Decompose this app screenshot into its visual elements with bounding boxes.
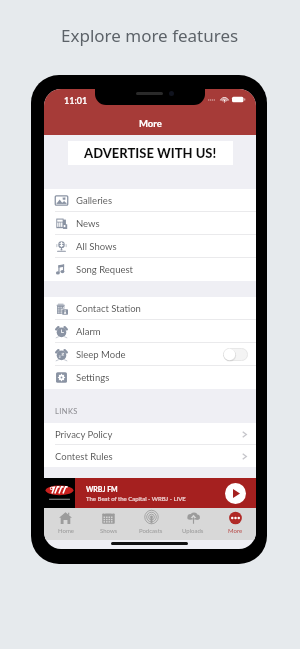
button[interactable]: All Shows: [44, 235, 256, 258]
staticText: ADVERTISE WITH US!: [84, 145, 217, 161]
button[interactable]: Song Request: [44, 258, 256, 281]
staticText: News: [76, 218, 100, 229]
button[interactable]: ADVERTISE WITH US!: [68, 141, 233, 165]
staticText: Contact Station: [76, 303, 141, 314]
button[interactable]: Sleep Mode: [44, 343, 256, 366]
button[interactable]: Alarm: [44, 320, 256, 343]
staticText: More: [228, 527, 243, 534]
staticText: Contest Rules: [55, 451, 113, 462]
button[interactable]: Contest Rules: [44, 445, 256, 467]
button[interactable]: Settings: [44, 366, 256, 389]
button[interactable]: Privacy Policy: [44, 423, 256, 445]
staticText: More: [139, 118, 162, 129]
staticText: Settings: [76, 372, 110, 383]
staticText: 11:01: [64, 95, 88, 106]
staticText: Alarm: [76, 326, 101, 337]
button[interactable]: More: [214, 508, 256, 540]
staticText: Shows: [100, 527, 118, 534]
staticText: The Beat of the Capital - WRBJ - LIVE: [86, 495, 186, 502]
button[interactable]: Galleries: [44, 189, 256, 212]
staticText: Privacy Policy: [55, 429, 113, 440]
staticText: WRBJ FM: [86, 485, 118, 493]
button[interactable]: Uploads: [172, 508, 214, 540]
button[interactable]: Home: [44, 508, 87, 540]
staticText: Song Request: [76, 264, 133, 275]
staticText: All Shows: [76, 241, 117, 252]
staticText: Sleep Mode: [76, 349, 126, 360]
staticText: Explore more features: [61, 24, 239, 47]
button[interactable]: Shows: [87, 508, 130, 540]
staticText: Uploads: [182, 527, 204, 534]
staticText: LINKS: [55, 407, 78, 416]
button[interactable]: News: [44, 212, 256, 235]
button[interactable]: Play: [225, 483, 246, 504]
button[interactable]: Podcasts: [130, 508, 172, 540]
button[interactable]: Contact Station: [44, 297, 256, 320]
staticText: Galleries: [76, 195, 113, 206]
staticText: Home: [58, 527, 74, 534]
staticText: Podcasts: [139, 527, 163, 534]
